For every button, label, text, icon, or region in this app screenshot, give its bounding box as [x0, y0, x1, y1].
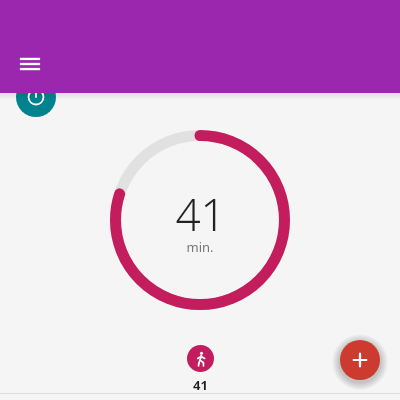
- button[interactable]: 41: [172, 345, 228, 395]
- staticText: min.: [186, 238, 214, 256]
- button[interactable]: Open navigation menu: [8, 42, 52, 86]
- button[interactable]: Timer: [16, 77, 56, 117]
- staticText: 41: [175, 184, 226, 234]
- button[interactable]: Add activity: [340, 340, 380, 380]
- staticText: 41: [193, 376, 208, 394]
